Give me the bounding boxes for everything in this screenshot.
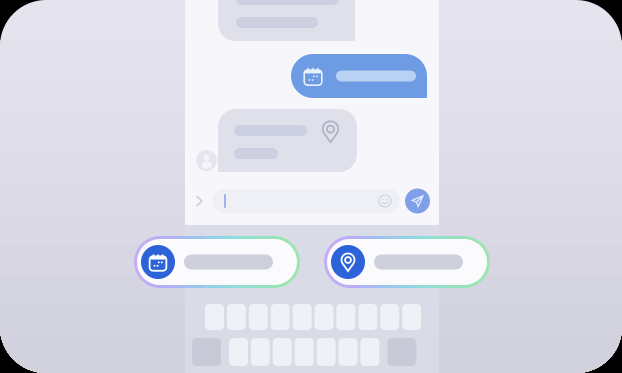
button[interactable] bbox=[324, 236, 490, 288]
button[interactable]: Send bbox=[403, 186, 432, 215]
button[interactable]: More options bbox=[188, 188, 210, 214]
button[interactable]: Emoji bbox=[375, 191, 395, 211]
button[interactable] bbox=[134, 236, 300, 288]
